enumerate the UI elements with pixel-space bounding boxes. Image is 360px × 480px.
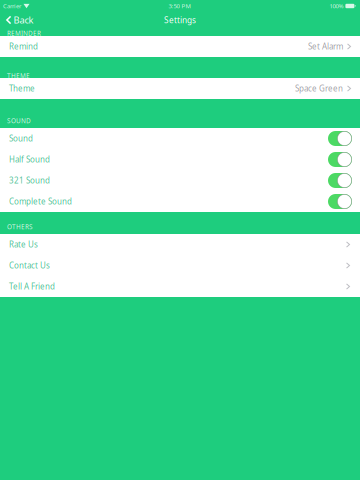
button[interactable]: 321 Sound — [0, 170, 360, 191]
staticText: Rate Us — [9, 239, 38, 250]
button[interactable]: Tell A Friend — [0, 276, 360, 297]
staticText: Remind — [9, 41, 38, 52]
staticText: Back — [13, 14, 33, 26]
staticText: SOUND — [7, 116, 31, 125]
staticText: Set Alarm — [308, 41, 343, 52]
staticText: Contact Us — [9, 260, 50, 271]
button[interactable]: Complete Sound — [0, 191, 360, 212]
button[interactable]: Theme — [0, 78, 360, 99]
staticText: Space Green — [295, 83, 343, 94]
staticText: Sound — [9, 133, 33, 144]
staticText: THEME — [7, 71, 30, 80]
button[interactable]: Sound — [0, 128, 360, 149]
button[interactable]: Rate Us — [0, 234, 360, 255]
staticText: 321 Sound — [9, 175, 50, 186]
staticText: Carrier — [3, 2, 21, 10]
staticText: Settings — [164, 14, 196, 26]
staticText: Tell A Friend — [9, 281, 55, 292]
staticText: Theme — [9, 83, 35, 94]
button[interactable]: Half Sound — [0, 149, 360, 170]
button[interactable]: Contact Us — [0, 255, 360, 276]
button[interactable]: Back — [0, 12, 39, 28]
staticText: 100% — [329, 2, 343, 10]
button[interactable]: Remind — [0, 36, 360, 57]
staticText: Half Sound — [9, 154, 50, 165]
staticText: REMINDER — [7, 29, 41, 37]
staticText: Complete Sound — [9, 196, 72, 207]
staticText: 3:50 PM — [168, 2, 190, 10]
staticText: OTHERS — [7, 222, 33, 231]
